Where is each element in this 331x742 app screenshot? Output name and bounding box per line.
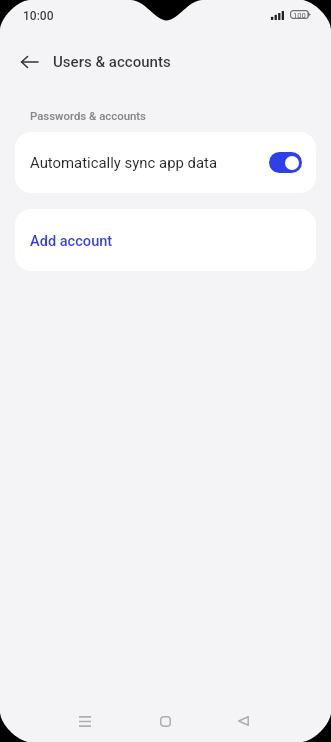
- button[interactable]: Automatically sync app data: [15, 132, 316, 193]
- staticText: 100: [293, 11, 306, 20]
- button[interactable]: Back: [11, 44, 47, 80]
- staticText: Add account: [30, 232, 113, 249]
- staticText: Passwords & accounts: [30, 109, 146, 122]
- staticText: Automatically sync app data: [30, 154, 218, 171]
- button[interactable]: Home: [143, 699, 187, 742]
- button[interactable]: Back: [221, 699, 265, 742]
- button[interactable]: Recent apps: [63, 699, 107, 742]
- button[interactable]: Add account: [15, 209, 316, 271]
- button[interactable]: Automatically sync app data: [269, 152, 302, 173]
- staticText: Users & accounts: [53, 53, 171, 71]
- staticText: 10:00: [23, 9, 54, 23]
